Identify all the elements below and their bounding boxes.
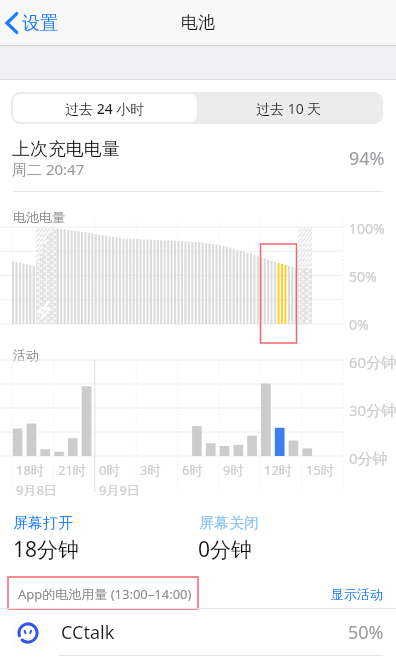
- button[interactable]: CCtalk: [0, 609, 396, 656]
- staticText: 6时: [182, 461, 203, 479]
- staticText: 活动: [13, 347, 39, 363]
- staticText: 显示活动: [331, 586, 383, 602]
- staticText: 设置: [22, 12, 58, 35]
- button[interactable]: 过去 24 小时: [13, 94, 197, 122]
- staticText: 12时: [264, 461, 292, 479]
- staticText: 50%: [348, 620, 384, 645]
- staticText: 0分钟: [349, 448, 388, 468]
- button[interactable]: 设置: [5, 2, 58, 44]
- staticText: 3时: [140, 461, 161, 479]
- staticText: 9月8日: [16, 481, 57, 499]
- button[interactable]: 过去 10 天: [197, 94, 381, 122]
- staticText: 0%: [349, 315, 369, 334]
- staticText: 过去 24 小时: [65, 99, 145, 118]
- staticText: 上次充电电量: [12, 138, 120, 161]
- staticText: 15时: [306, 461, 334, 479]
- staticText: 21时: [58, 461, 86, 479]
- staticText: 100%: [349, 219, 385, 238]
- staticText: 50%: [349, 267, 377, 286]
- staticText: 9月9日: [99, 481, 140, 499]
- staticText: 周二 20:47: [12, 159, 85, 179]
- staticText: 9时: [223, 461, 244, 479]
- staticText: 过去 10 天: [256, 99, 322, 118]
- staticText: 电池: [181, 12, 215, 33]
- staticText: 60分钟: [349, 352, 396, 372]
- staticText: CCtalk: [61, 620, 348, 645]
- staticText: 屏幕关闭: [199, 514, 259, 533]
- staticText: 94%: [349, 146, 385, 171]
- staticText: App的电池用量 (13:00–14:00): [18, 585, 192, 603]
- staticText: 电池电量: [13, 209, 65, 225]
- staticText: 18时: [16, 461, 44, 479]
- staticText: 30分钟: [349, 400, 396, 420]
- staticText: 0时: [99, 461, 120, 479]
- staticText: 18分钟: [13, 535, 80, 564]
- staticText: 0分钟: [198, 535, 253, 564]
- staticText: 屏幕打开: [13, 514, 73, 533]
- button[interactable]: 显示活动: [331, 586, 383, 602]
